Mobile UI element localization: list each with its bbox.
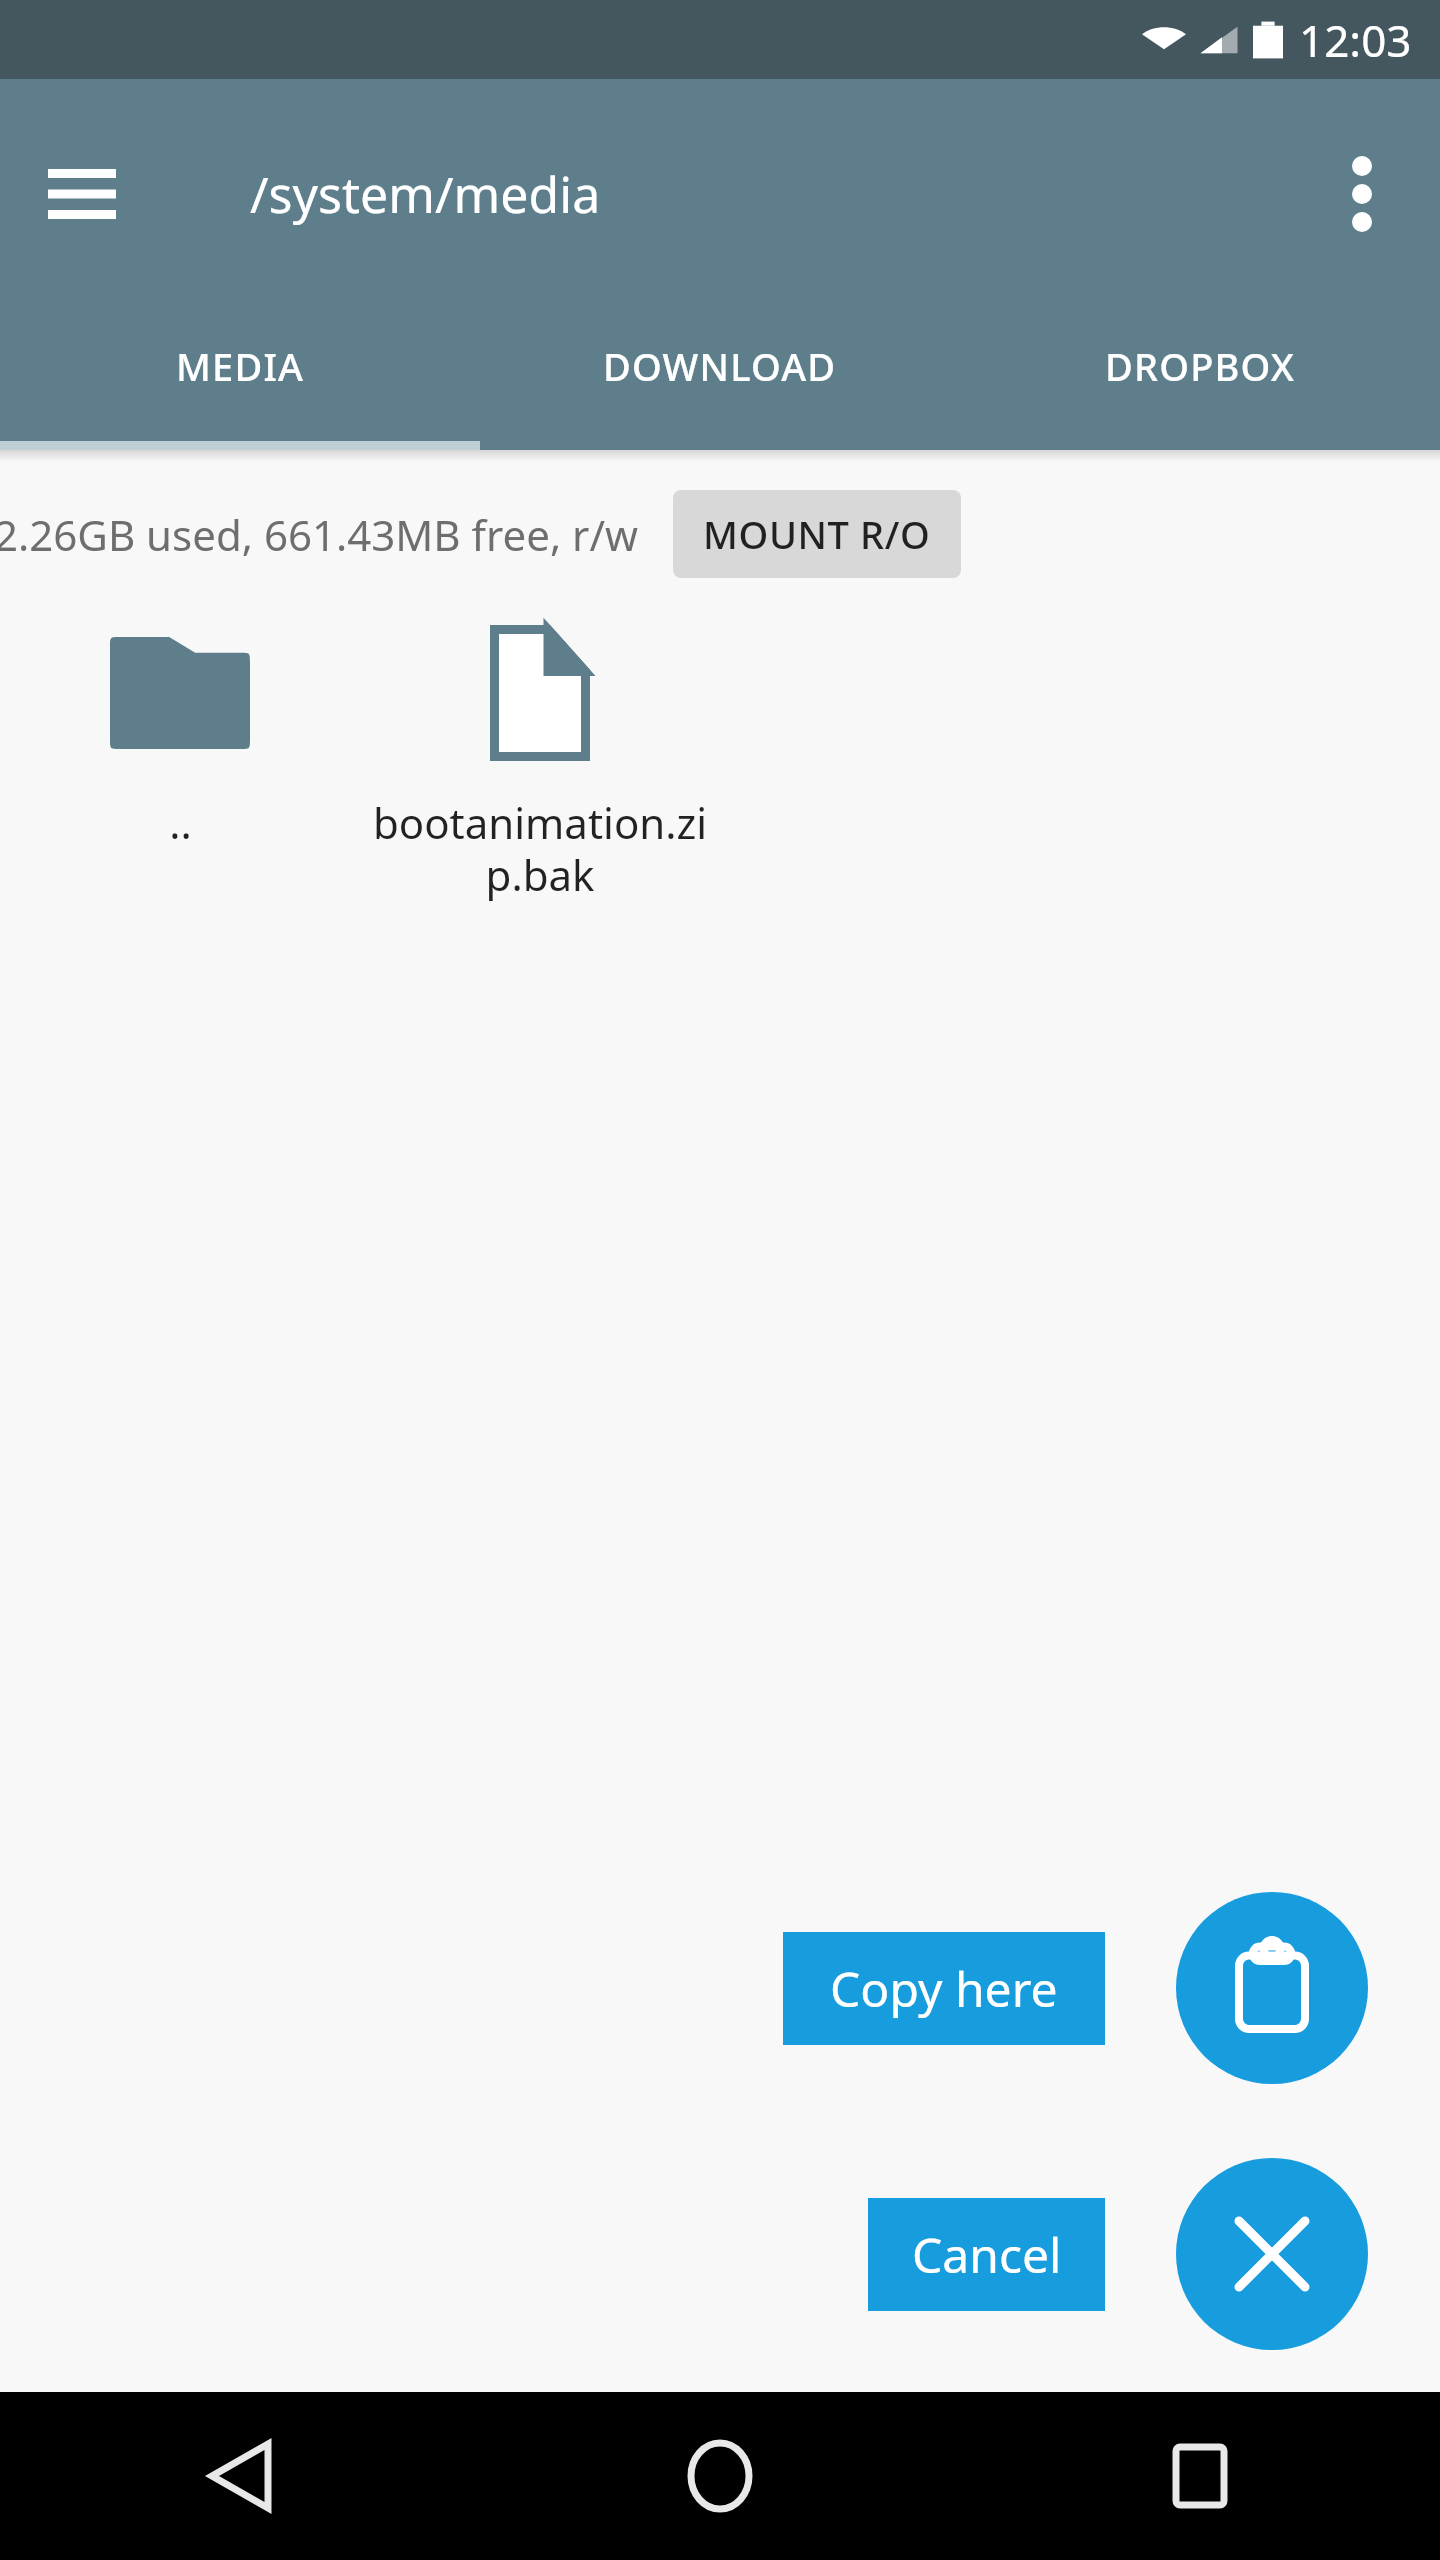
button[interactable]: Home xyxy=(480,2392,960,2560)
staticText: /system/media xyxy=(250,160,601,228)
staticText: MOUNT R/O xyxy=(703,508,931,560)
staticText: .. xyxy=(169,794,192,851)
button[interactable]: DOWNLOAD xyxy=(480,309,960,450)
staticText: Cancel xyxy=(912,2222,1062,2287)
button[interactable]: DROPBOX xyxy=(960,309,1440,450)
button[interactable]: Copy here xyxy=(783,1932,1105,2045)
staticText: DOWNLOAD xyxy=(603,340,837,392)
staticText: bootanimation.zip.bak xyxy=(360,794,720,903)
button[interactable]: bootanimation.zip.bak xyxy=(360,610,720,903)
button[interactable]: MEDIA xyxy=(0,309,480,450)
button[interactable]: .. xyxy=(0,610,360,851)
staticText: 2.26GB used, 661.43MB free, r/w xyxy=(0,506,639,563)
button[interactable]: Open navigation menu xyxy=(34,146,130,242)
button[interactable]: More options xyxy=(1314,146,1410,242)
button[interactable]: Cancel xyxy=(868,2198,1105,2311)
button[interactable]: Cancel xyxy=(1176,2158,1368,2350)
button[interactable]: MOUNT R/O xyxy=(673,490,961,578)
staticText: DROPBOX xyxy=(1105,340,1296,392)
staticText: 12:03 xyxy=(1299,10,1412,70)
staticText: MEDIA xyxy=(176,340,305,392)
button[interactable]: Back xyxy=(0,2392,480,2560)
button[interactable]: Paste xyxy=(1176,1892,1368,2084)
staticText: Copy here xyxy=(830,1956,1058,2021)
button[interactable]: Recent apps xyxy=(960,2392,1440,2560)
